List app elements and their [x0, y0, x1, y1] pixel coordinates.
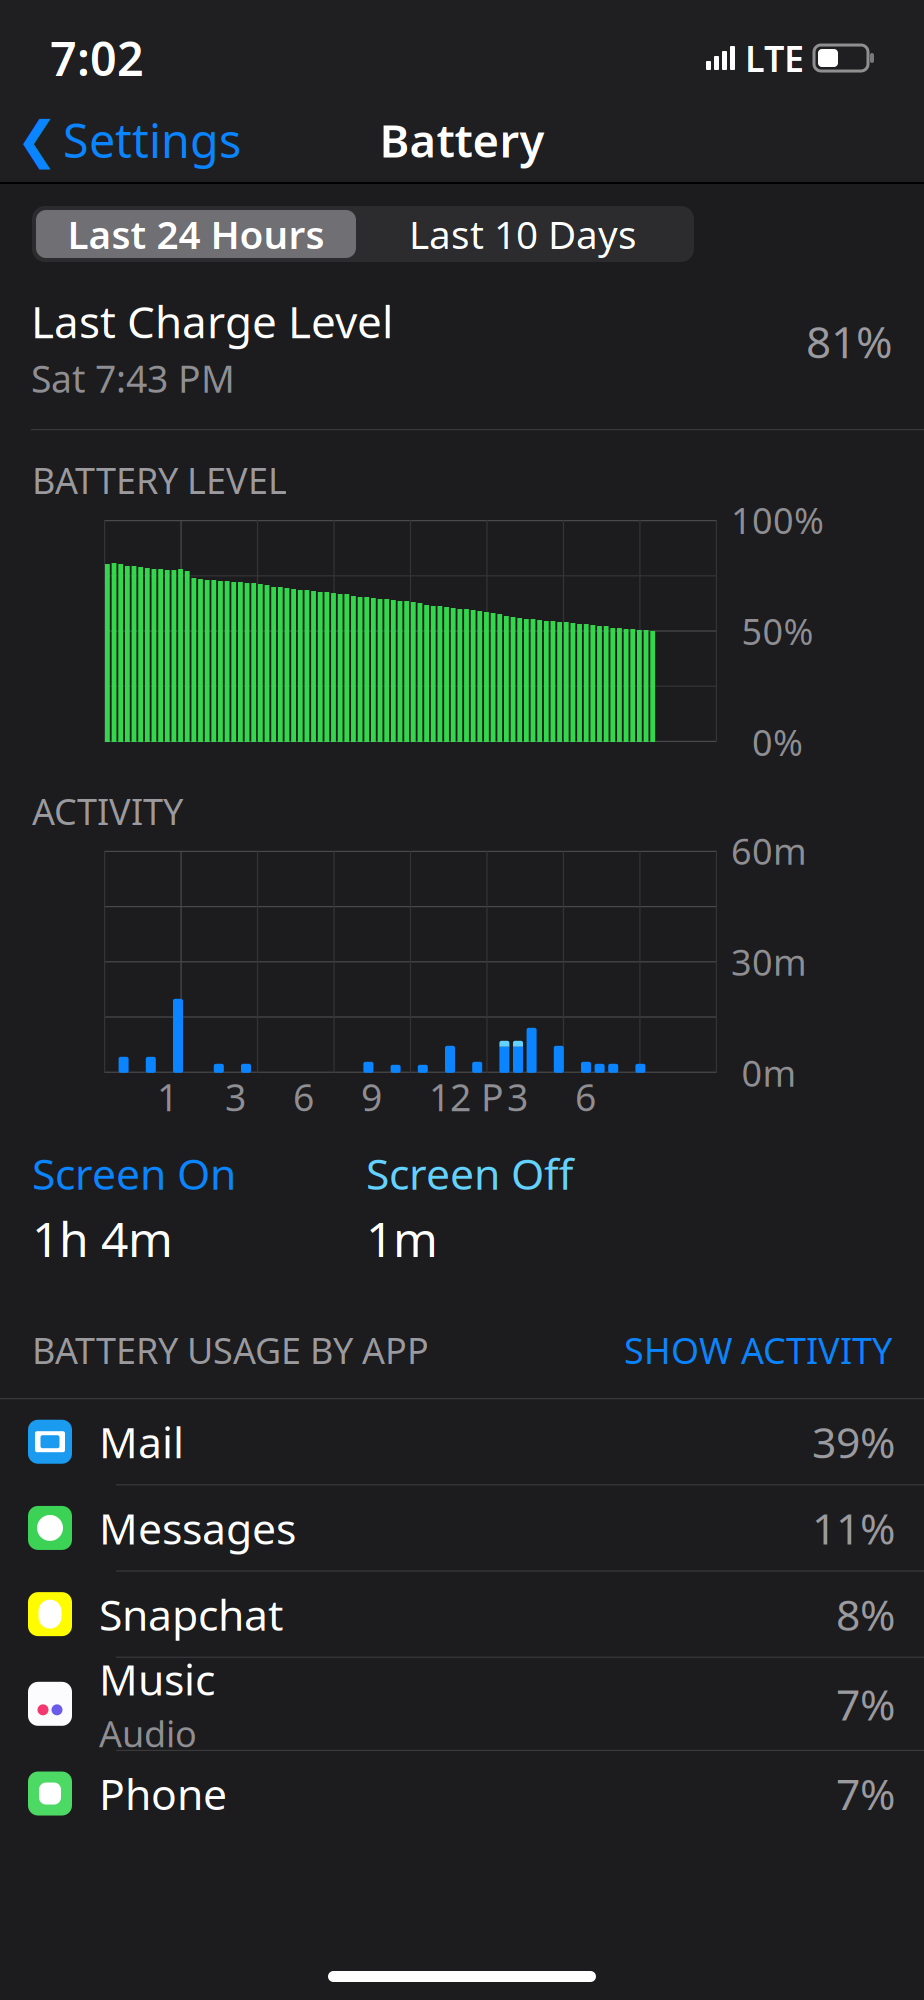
staticText: 6 — [293, 1072, 314, 1122]
button[interactable]: Snapchat — [0, 1572, 924, 1657]
button[interactable]: Mail — [0, 1399, 924, 1484]
button[interactable]: Phone — [0, 1751, 924, 1836]
staticText: 50% — [741, 607, 813, 655]
button[interactable]: Last 10 Days — [356, 210, 690, 258]
staticText: ❮ — [16, 111, 58, 169]
button[interactable]: ❮ — [0, 97, 241, 183]
staticText: 12 P — [429, 1072, 504, 1122]
staticText: BATTERY LEVEL — [32, 456, 287, 504]
staticText: Phone — [99, 1765, 227, 1822]
button[interactable]: SHOW ACTIVITY — [624, 1326, 892, 1374]
staticText: 81% — [806, 312, 893, 370]
staticText: 8% — [836, 1586, 895, 1642]
staticText: Snapchat — [99, 1586, 283, 1642]
staticText: 7:02 — [50, 27, 144, 89]
staticText: Mail — [99, 1413, 184, 1470]
staticText: Screen Off — [366, 1145, 573, 1201]
staticText: 3 — [507, 1072, 528, 1122]
staticText: 11% — [812, 1500, 895, 1556]
button[interactable]: Music — [0, 1658, 924, 1750]
staticText: 9 — [361, 1072, 382, 1122]
staticText: 39% — [812, 1413, 895, 1470]
staticText: 0% — [752, 718, 803, 766]
button[interactable]: Messages — [0, 1485, 924, 1570]
staticText: LTE — [745, 34, 804, 82]
staticText: 1h 4m — [32, 1206, 173, 1270]
staticText: Music — [99, 1651, 215, 1707]
staticText: SHOW ACTIVITY — [624, 1326, 892, 1374]
staticText: 1m — [366, 1206, 438, 1270]
staticText: 3 — [225, 1072, 246, 1122]
staticText: 0m — [741, 1049, 796, 1097]
staticText: Last Charge Level — [31, 292, 393, 350]
staticText: Sat 7:43 PM — [31, 353, 235, 403]
staticText: 7% — [836, 1675, 895, 1732]
staticText: Settings — [63, 109, 241, 171]
staticText: 6 — [575, 1072, 596, 1122]
staticText: Audio — [99, 1709, 197, 1757]
staticText: 1 — [157, 1072, 178, 1122]
staticText: Messages — [99, 1500, 296, 1556]
staticText: Screen On — [32, 1145, 236, 1201]
button[interactable]: Last 24 Hours — [36, 210, 356, 258]
staticText: 30m — [731, 938, 807, 986]
staticText: 60m — [731, 827, 807, 875]
staticText: Last 10 Days — [409, 208, 637, 260]
staticText: 7% — [836, 1765, 895, 1822]
staticText: ACTIVITY — [32, 787, 183, 835]
staticText: Last 24 Hours — [67, 208, 324, 260]
staticText: BATTERY USAGE BY APP — [32, 1326, 429, 1374]
staticText: 100% — [731, 496, 824, 544]
staticText: Battery — [379, 110, 544, 170]
